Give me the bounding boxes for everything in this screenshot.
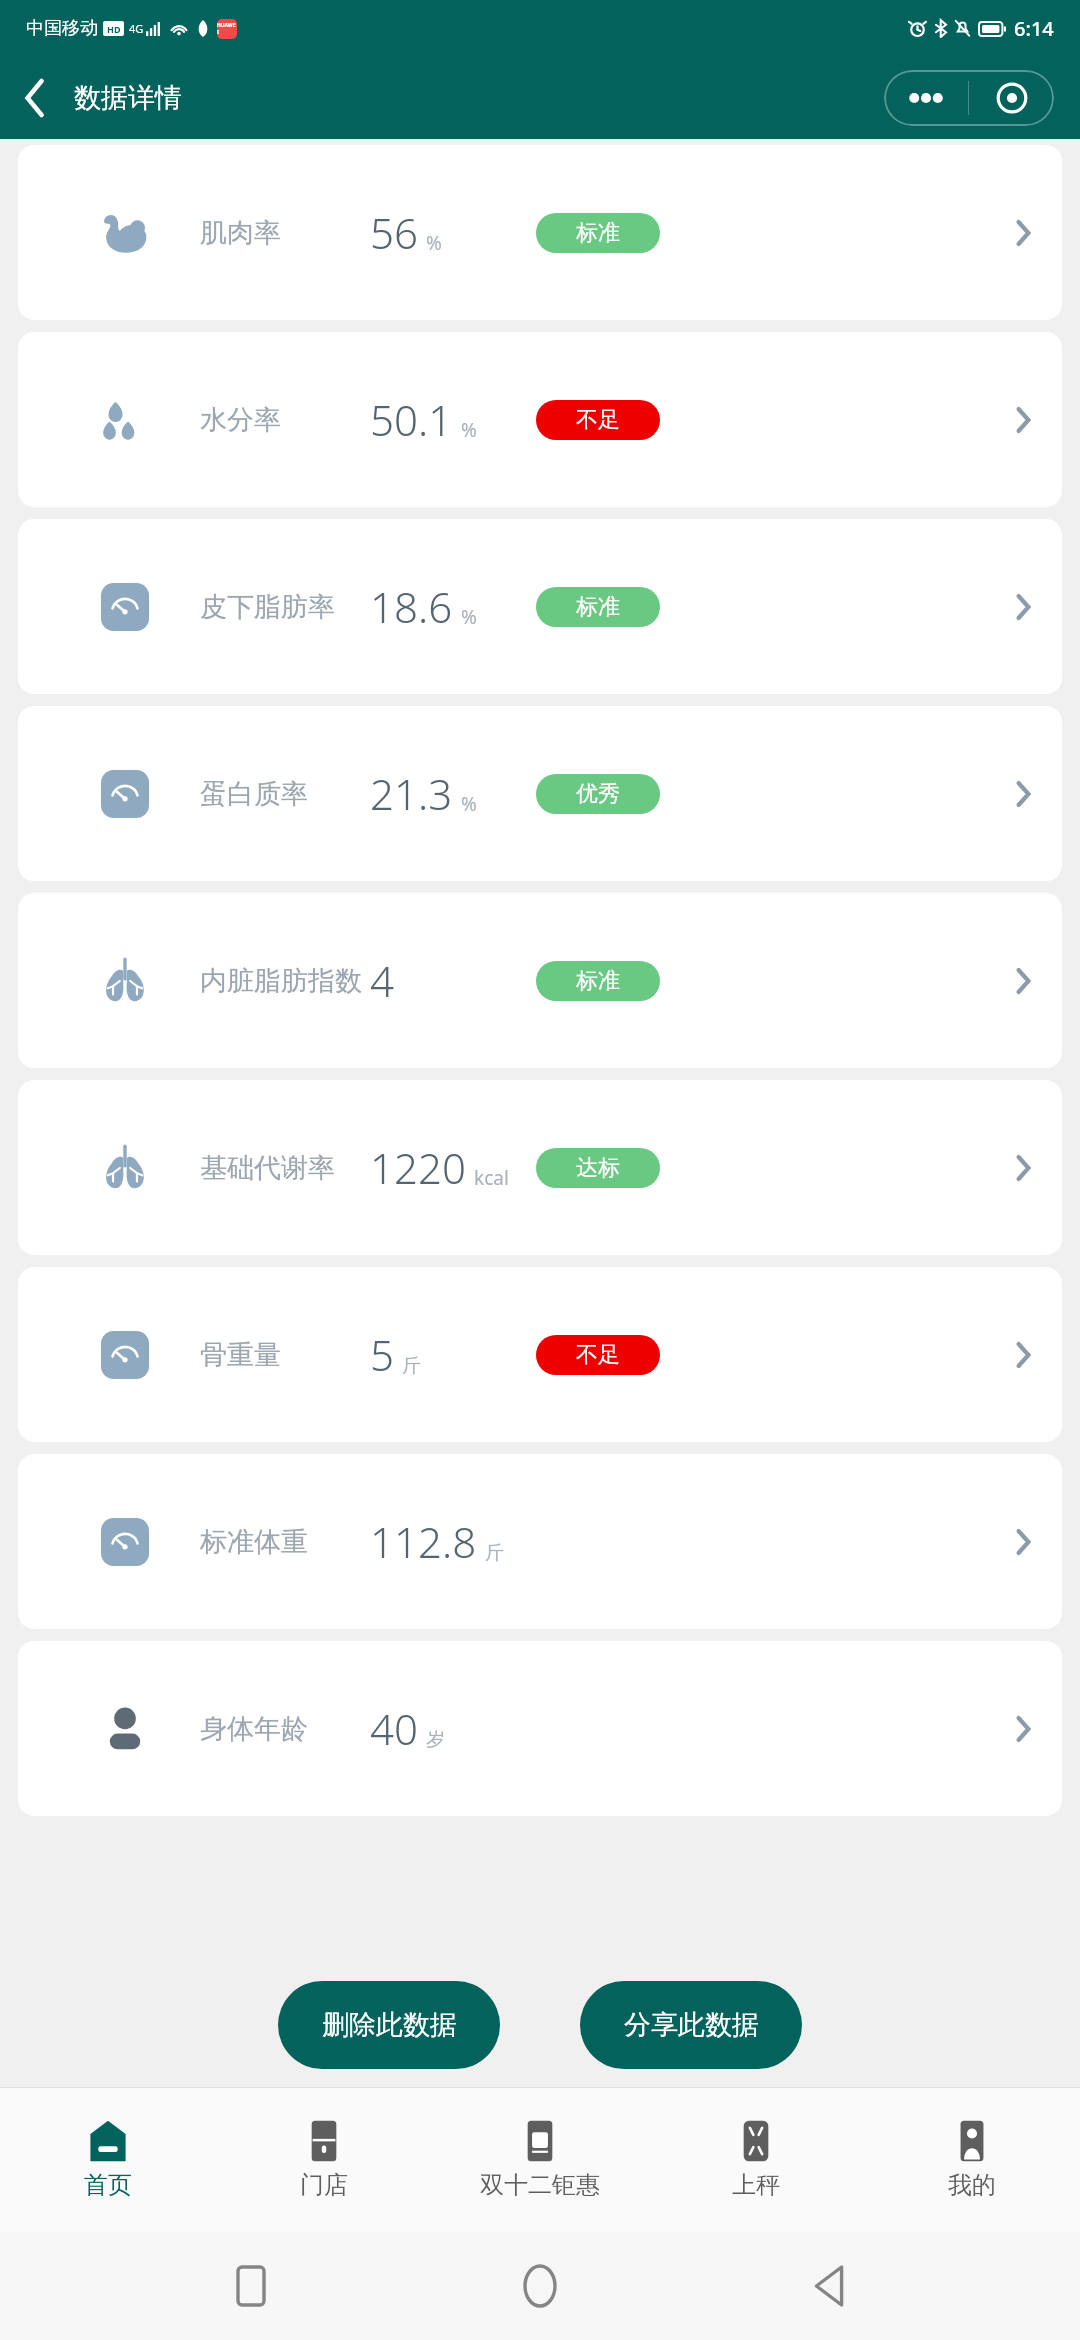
button[interactable]: 查看 水分率 详情 xyxy=(1006,403,1040,437)
button[interactable]: 查看 皮下脂肪率 详情 xyxy=(1006,590,1040,624)
staticText: 达标 xyxy=(576,1154,620,1182)
staticText: 双十二钜惠 xyxy=(480,2170,600,2200)
button[interactable]: 主页 xyxy=(502,2248,578,2324)
staticText: % xyxy=(461,417,477,443)
staticText: 岁 xyxy=(426,1728,445,1752)
staticText: 标准体重 xyxy=(200,1525,308,1559)
staticText: HUAWEI xyxy=(217,22,237,36)
button[interactable]: 删除此数据 xyxy=(278,1981,500,2069)
button[interactable]: 返回 xyxy=(0,63,70,133)
button[interactable]: 我的 xyxy=(864,2087,1080,2232)
button[interactable]: 分享此数据 xyxy=(580,1981,802,2069)
button[interactable]: 达标 xyxy=(536,1148,660,1188)
button[interactable]: 首页 xyxy=(0,2087,216,2232)
staticText: 4 xyxy=(370,952,394,1009)
button[interactable]: 不足 xyxy=(536,1335,660,1375)
staticText: 56 xyxy=(370,204,418,261)
button[interactable]: 最近任务 xyxy=(213,2248,289,2324)
button[interactable]: 查看 肌肉率 详情 xyxy=(1006,216,1040,250)
staticText: 斤 xyxy=(485,1541,504,1565)
staticText: 删除此数据 xyxy=(322,2008,457,2042)
staticText: 数据详情 xyxy=(74,81,182,115)
staticText: 21.3 xyxy=(370,765,453,822)
button[interactable]: 骨重量 xyxy=(18,1267,1062,1442)
button[interactable]: 查看 标准体重 详情 xyxy=(1006,1525,1040,1559)
staticText: 基础代谢率 xyxy=(200,1151,335,1185)
button[interactable]: 标准体重 xyxy=(18,1454,1062,1629)
button[interactable]: 标准 xyxy=(536,587,660,627)
button[interactable]: 蛋白质率 xyxy=(18,706,1062,881)
staticText: 优秀 xyxy=(576,780,620,808)
staticText: 40 xyxy=(370,1700,418,1757)
staticText: 斤 xyxy=(402,1354,421,1378)
button[interactable]: 更多 xyxy=(884,70,968,126)
button[interactable]: 标准 xyxy=(536,961,660,1001)
button[interactable]: 门店 xyxy=(216,2087,432,2232)
button[interactable]: 返回 xyxy=(791,2248,867,2324)
staticText: 标准 xyxy=(576,967,620,995)
button[interactable]: 内脏脂肪指数 xyxy=(18,893,1062,1068)
button[interactable]: 肌肉率 xyxy=(18,145,1062,320)
staticText: 皮下脂肪率 xyxy=(200,590,335,624)
staticText: 身体年龄 xyxy=(200,1712,308,1746)
staticText: 112.8 xyxy=(370,1513,477,1570)
staticText: 标准 xyxy=(576,593,620,621)
button[interactable]: 皮下脂肪率 xyxy=(18,519,1062,694)
staticText: 分享此数据 xyxy=(624,2008,759,2042)
staticText: HD xyxy=(107,23,121,35)
staticText: 50.1 xyxy=(370,391,453,448)
button[interactable]: 身体年龄 xyxy=(18,1641,1062,1816)
staticText: 首页 xyxy=(84,2170,132,2200)
button[interactable]: 查看 基础代谢率 详情 xyxy=(1006,1151,1040,1185)
button[interactable]: 水分率 xyxy=(18,332,1062,507)
staticText: 蛋白质率 xyxy=(200,777,308,811)
staticText: 肌肉率 xyxy=(200,216,281,250)
staticText: 内脏脂肪指数 xyxy=(200,964,362,998)
staticText: 6:14 xyxy=(1014,15,1054,42)
staticText: 5 xyxy=(370,1326,394,1383)
staticText: 18.6 xyxy=(370,578,453,635)
button[interactable]: 扫一扫 xyxy=(969,70,1054,126)
button[interactable]: 上秤 xyxy=(648,2087,864,2232)
staticText: 中国移动 xyxy=(26,17,98,40)
button[interactable]: 优秀 xyxy=(536,774,660,814)
button[interactable]: 标准 xyxy=(536,213,660,253)
button[interactable]: 基础代谢率 xyxy=(18,1080,1062,1255)
button[interactable]: 查看 身体年龄 详情 xyxy=(1006,1712,1040,1746)
button[interactable]: 查看 骨重量 详情 xyxy=(1006,1338,1040,1372)
button[interactable]: 双十二钜惠 xyxy=(432,2087,648,2232)
staticText: % xyxy=(426,230,442,256)
button[interactable]: 不足 xyxy=(536,400,660,440)
staticText: 4G xyxy=(129,21,144,36)
staticText: 水分率 xyxy=(200,403,281,437)
staticText: 标准 xyxy=(576,219,620,247)
staticText: 我的 xyxy=(948,2170,996,2200)
button[interactable]: 查看 蛋白质率 详情 xyxy=(1006,777,1040,811)
staticText: 不足 xyxy=(576,1341,620,1369)
staticText: % xyxy=(461,791,477,817)
staticText: kcal xyxy=(474,1165,509,1191)
staticText: 1220 xyxy=(370,1139,466,1196)
staticText: % xyxy=(461,604,477,630)
staticText: 不足 xyxy=(576,406,620,434)
button[interactable]: 查看 内脏脂肪指数 详情 xyxy=(1006,964,1040,998)
staticText: 上秤 xyxy=(732,2170,780,2200)
staticText: 门店 xyxy=(300,2170,348,2200)
staticText: 骨重量 xyxy=(200,1338,281,1372)
